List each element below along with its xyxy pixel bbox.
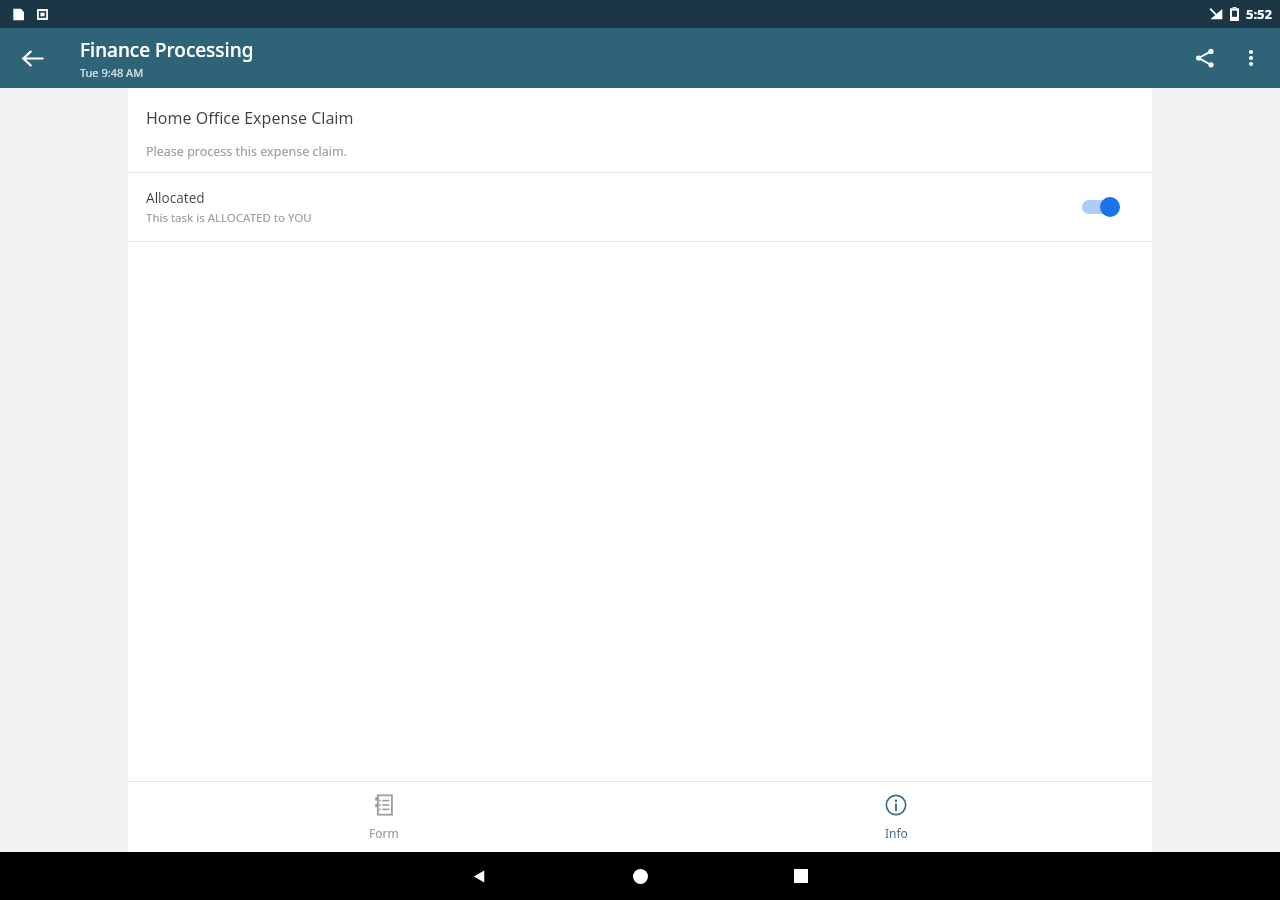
button[interactable]: Recent apps [779, 854, 823, 898]
staticText: This task is ALLOCATED to YOU [146, 210, 312, 226]
staticText: Please process this expense claim. [146, 143, 347, 160]
staticText: Home Office Expense Claim [146, 107, 354, 129]
button[interactable]: More options [1228, 35, 1274, 81]
staticText: Allocated [146, 189, 205, 207]
staticText: Finance Processing [80, 37, 254, 63]
button[interactable]: Allocated toggle, on [1078, 190, 1130, 224]
button[interactable]: Form [299, 782, 469, 852]
staticText: Tue 9:48 AM [80, 65, 144, 80]
button[interactable]: Info [811, 782, 981, 852]
staticText: 5:52 [1246, 5, 1272, 23]
button[interactable]: Share [1182, 35, 1228, 81]
staticText: Form [369, 825, 399, 841]
button[interactable]: Allocated [128, 173, 1152, 241]
button[interactable]: Back [457, 854, 501, 898]
staticText: Info [885, 825, 908, 841]
button[interactable]: Home Office Expense Claim [128, 88, 1152, 172]
button[interactable]: Home [618, 854, 662, 898]
button[interactable]: Back [8, 34, 56, 82]
